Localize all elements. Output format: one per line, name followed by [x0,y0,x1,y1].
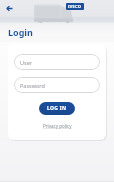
staticText: User [20,59,33,66]
staticText: Login [8,26,33,38]
button[interactable]: Password [14,77,100,93]
staticText: Password [20,82,45,89]
button[interactable]: Back [3,2,16,15]
staticText: IVECO [68,4,82,9]
button[interactable]: LOG IN [39,102,75,115]
staticText: LOG IN [47,105,67,112]
button[interactable]: User [14,54,100,70]
button[interactable]: Privacy policy [41,122,74,130]
